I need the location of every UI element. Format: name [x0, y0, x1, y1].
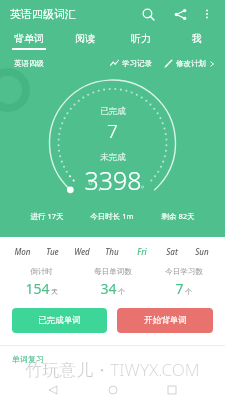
- staticText: 背单词: [14, 32, 44, 45]
- staticText: 154: [25, 279, 50, 298]
- button[interactable]: Home: [106, 383, 120, 397]
- button[interactable]: 倒计时: [6, 267, 77, 298]
- button[interactable]: 背单词: [0, 28, 57, 53]
- staticText: 英语四级词汇: [10, 7, 76, 21]
- staticText: 听力: [131, 32, 151, 45]
- staticText: 个: [185, 287, 192, 296]
- staticText: 今日时长 1m: [90, 211, 134, 221]
- button[interactable]: 阅读: [57, 28, 113, 53]
- staticText: Mon: [14, 246, 31, 257]
- button[interactable]: Thu: [97, 243, 127, 259]
- staticText: 34: [100, 279, 117, 298]
- button[interactable]: 每日单词数: [77, 267, 148, 298]
- staticText: Fri: [137, 246, 147, 257]
- button[interactable]: 已完成单词: [12, 308, 107, 333]
- staticText: 每日单词数: [94, 267, 132, 276]
- staticText: Sun: [195, 246, 209, 257]
- button[interactable]: Recents: [165, 383, 179, 397]
- staticText: 我: [192, 32, 202, 45]
- staticText: 单词复习: [12, 354, 44, 364]
- button[interactable]: 修改计划: [164, 59, 215, 68]
- staticText: 剩余 82天: [161, 211, 195, 221]
- button[interactable]: Sun: [187, 243, 217, 259]
- button[interactable]: Back: [46, 383, 60, 397]
- staticText: 未完成: [100, 152, 126, 163]
- button[interactable]: Share: [167, 1, 193, 27]
- staticText: 学习记录: [122, 59, 152, 68]
- staticText: 7: [175, 279, 184, 298]
- staticText: 竹玩意儿・TIWYX.COM: [25, 358, 200, 381]
- button[interactable]: Tue: [37, 243, 67, 259]
- staticText: 3398: [84, 163, 142, 197]
- staticText: 英语四级: [14, 59, 44, 68]
- staticText: 修改计划: [176, 59, 206, 68]
- staticText: 个: [118, 287, 125, 296]
- button[interactable]: Wed: [67, 243, 97, 259]
- button[interactable]: Sat: [157, 243, 187, 259]
- staticText: 已完成单词: [38, 315, 81, 326]
- button[interactable]: Fri: [127, 243, 157, 259]
- staticText: 天: [51, 287, 58, 296]
- staticText: 今日学习数: [165, 267, 203, 276]
- staticText: 倒计时: [30, 267, 53, 276]
- staticText: 进行 17天: [30, 211, 64, 221]
- staticText: 开始背单词: [144, 315, 187, 326]
- staticText: Tue: [46, 246, 59, 257]
- staticText: 阅读: [75, 32, 95, 45]
- button[interactable]: 听力: [113, 28, 169, 53]
- staticText: 已完成: [100, 106, 126, 117]
- button[interactable]: 今日学习数: [148, 267, 219, 298]
- button[interactable]: 学习记录: [110, 59, 152, 68]
- staticText: Sat: [166, 246, 178, 257]
- button[interactable]: 我: [169, 28, 225, 53]
- staticText: 7: [107, 118, 118, 144]
- button[interactable]: 开始背单词: [117, 308, 213, 333]
- staticText: Thu: [105, 246, 119, 257]
- button[interactable]: Search: [135, 1, 161, 27]
- staticText: Wed: [74, 246, 90, 257]
- button[interactable]: More options: [195, 2, 219, 26]
- button[interactable]: Mon: [8, 243, 37, 259]
